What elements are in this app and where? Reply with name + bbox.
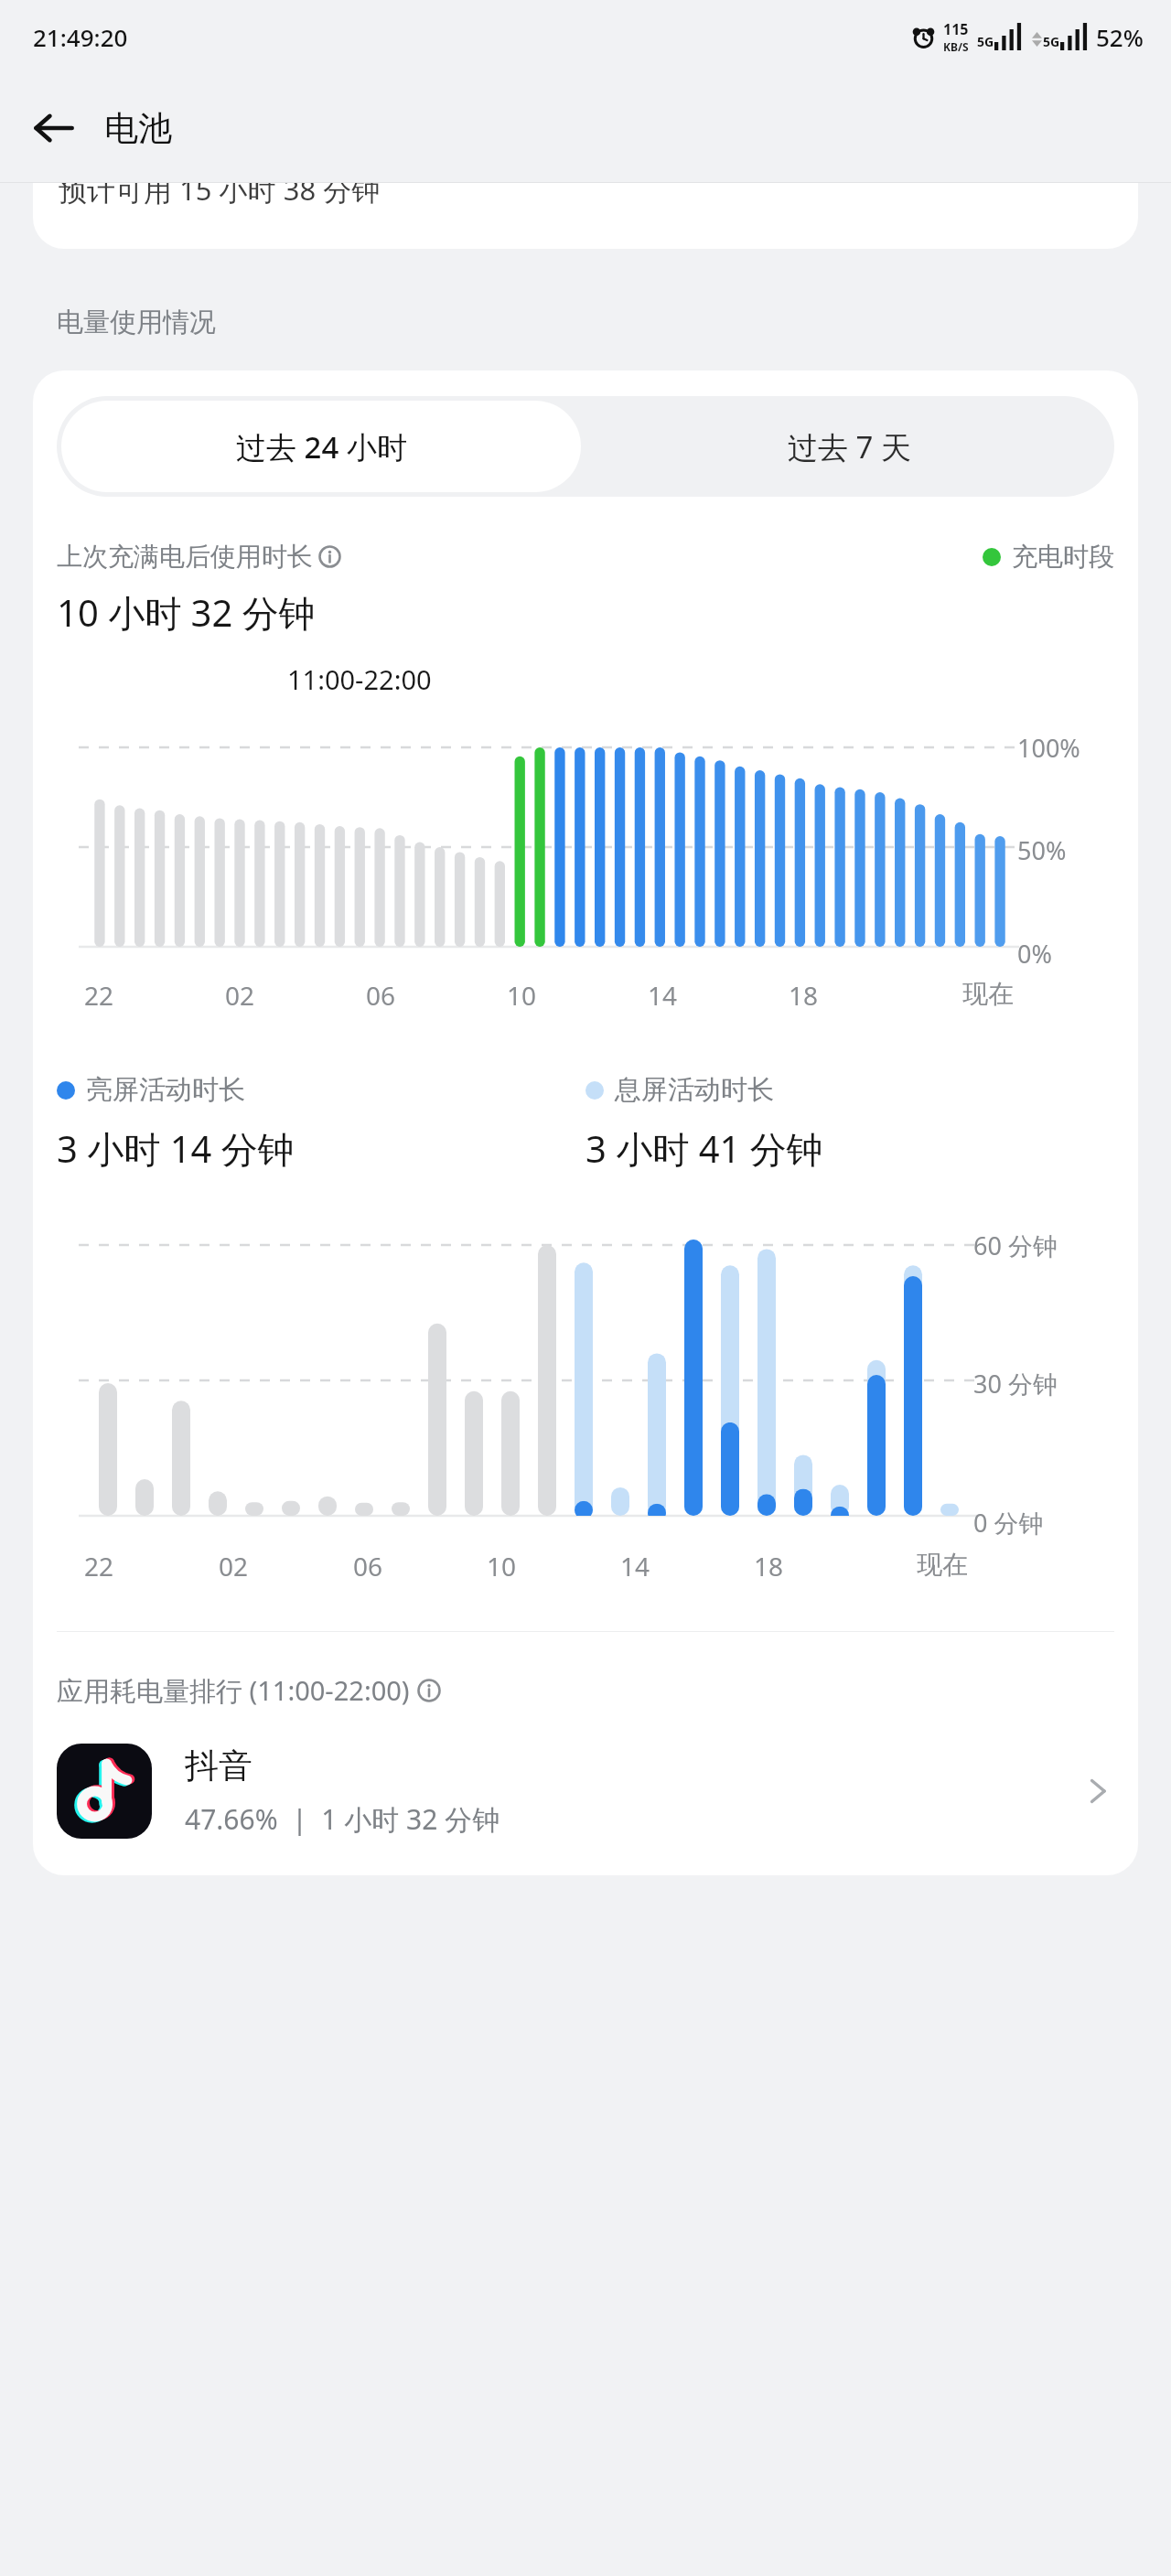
staticText: 21:49:20 [33, 21, 128, 53]
staticText: 电池 [104, 107, 172, 150]
staticText: 10 小时 32 分钟 [57, 587, 316, 638]
staticText: 3 小时 14 分钟 [57, 1123, 295, 1174]
staticText: 11:00-22:00 [287, 661, 432, 697]
staticText: 18 [754, 1549, 784, 1583]
staticText: 14 [620, 1549, 650, 1583]
staticText: 47.66% | 1 小时 32 分钟 [185, 1800, 500, 1838]
other: Details [1081, 1775, 1114, 1808]
staticText: 现在 [962, 978, 1014, 1010]
staticText: 过去 24 小时 [236, 426, 407, 467]
staticText: 50% [1017, 833, 1067, 867]
staticText: 30 分钟 [973, 1367, 1058, 1401]
staticText: 22 [84, 978, 114, 1013]
button[interactable]: 过去 7 天 [585, 396, 1114, 497]
staticText: 上次充满电后使用时长 [57, 541, 313, 573]
staticText: 现在 [917, 1549, 968, 1581]
staticText: 抖音 [185, 1744, 252, 1787]
staticText: 10 [487, 1549, 517, 1583]
staticText: 22 [84, 1549, 114, 1583]
staticText: 预计可用 15 小时 38 分钟 [59, 183, 381, 209]
staticText: 充电时段 [1012, 541, 1114, 573]
staticText: 100% [1017, 731, 1080, 765]
staticText: 0 分钟 [973, 1506, 1044, 1540]
staticText: 60 分钟 [973, 1229, 1058, 1262]
button[interactable]: Back [20, 95, 86, 161]
staticText: 0% [1017, 937, 1052, 971]
staticText: 14 [648, 978, 678, 1013]
button[interactable]: 过去 24 小时 [61, 401, 581, 492]
staticText: 06 [353, 1549, 383, 1583]
staticText: 3 小时 41 分钟 [585, 1123, 823, 1174]
staticText: 52% [1096, 21, 1144, 53]
staticText: 应用耗电量排行 (11:00-22:00) [57, 1672, 410, 1709]
staticText: 06 [366, 978, 396, 1013]
staticText: 亮屏活动时长 [86, 1073, 245, 1107]
button[interactable]: 抖音 [33, 1744, 1138, 1839]
staticText: 02 [219, 1549, 249, 1583]
staticText: 5G [1043, 33, 1060, 50]
staticText: 电量使用情况 [57, 306, 216, 339]
staticText: 过去 7 天 [788, 426, 912, 467]
staticText: 息屏活动时长 [615, 1073, 774, 1107]
staticText: 115 [943, 19, 969, 39]
staticText: KB/S [943, 39, 969, 54]
button[interactable]: 预计可用 15 小时 38 分钟 [33, 183, 1138, 249]
staticText: 10 [507, 978, 537, 1013]
staticText: 18 [789, 978, 819, 1013]
staticText: 02 [225, 978, 255, 1013]
staticText: 5G [977, 33, 994, 50]
